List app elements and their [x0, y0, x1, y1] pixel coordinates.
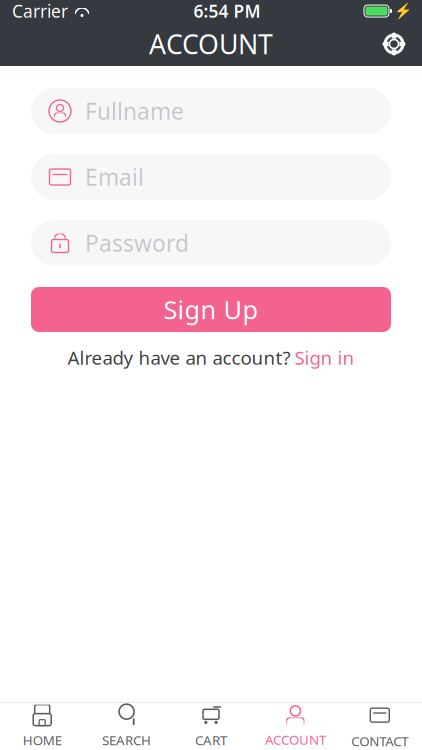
button[interactable]: CONTACT — [338, 696, 422, 750]
staticText: Sign in — [294, 345, 354, 370]
staticText: CONTACT — [351, 732, 408, 750]
button[interactable]: Sign in — [294, 345, 354, 370]
staticText: CART — [195, 731, 227, 749]
staticText: HOME — [23, 731, 62, 749]
staticText: Password — [85, 228, 189, 258]
staticText: ACCOUNT — [149, 26, 273, 62]
staticText: Email — [85, 162, 144, 192]
staticText: Already have an account? — [67, 345, 290, 370]
staticText: Carrier — [12, 0, 68, 22]
staticText: SEARCH — [102, 731, 151, 749]
button[interactable]: CART — [169, 697, 253, 750]
button[interactable]: Sign Up — [31, 287, 391, 332]
staticText: ACCOUNT — [265, 731, 326, 748]
button[interactable]: SEARCH — [84, 697, 169, 750]
staticText: 6:54 PM — [193, 0, 260, 22]
staticText: ⚡ — [394, 3, 412, 19]
button[interactable]: HOME — [0, 697, 84, 750]
staticText: Sign Up — [163, 293, 258, 326]
staticText: Fullname — [85, 96, 184, 126]
button[interactable]: Settings — [371, 23, 422, 65]
button[interactable]: ACCOUNT — [253, 698, 338, 750]
